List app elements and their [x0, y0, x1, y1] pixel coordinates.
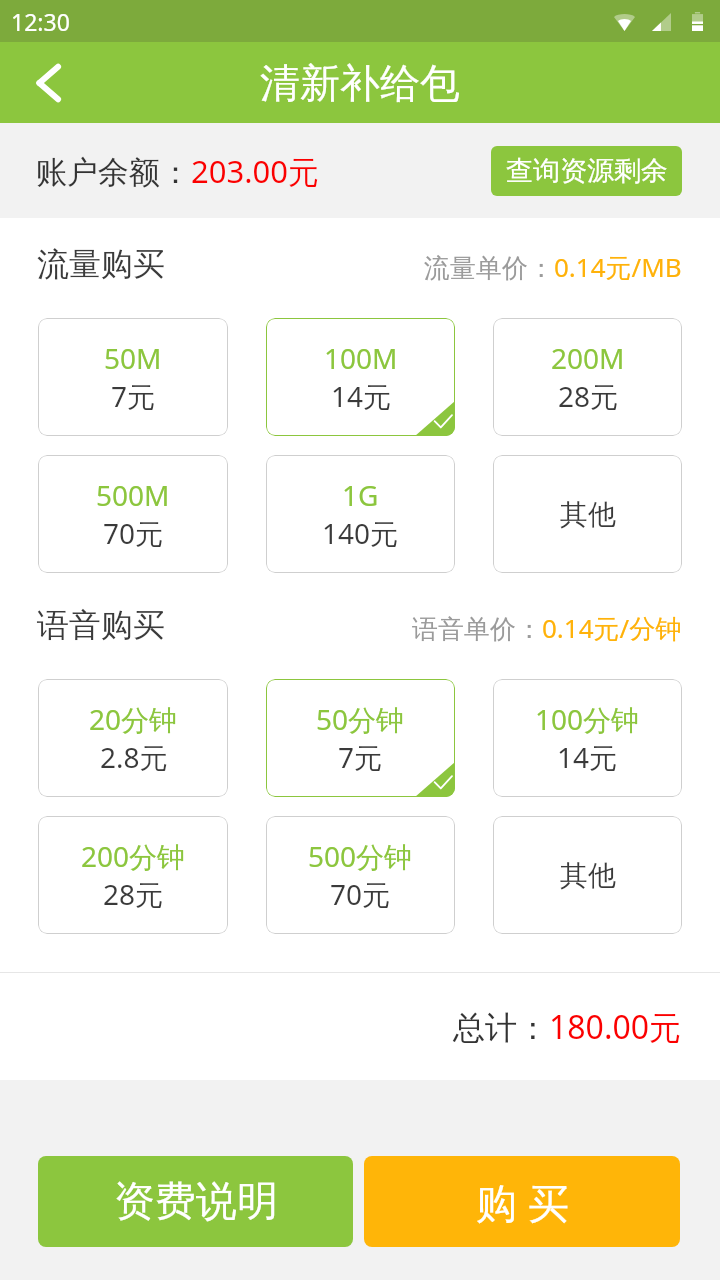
button[interactable]: 资费说明: [38, 1156, 353, 1247]
staticText: 2.8元: [100, 738, 168, 776]
staticText: 14元: [557, 738, 618, 776]
staticText: 70元: [330, 875, 391, 913]
staticText: 语音单价：0.14元/分钟: [412, 610, 682, 646]
staticText: 28元: [103, 875, 164, 913]
button[interactable]: 购 买: [364, 1156, 680, 1247]
button[interactable]: 100分钟: [493, 679, 682, 797]
staticText: 清新补给包: [260, 58, 460, 108]
staticText: 70元: [103, 514, 164, 552]
button[interactable]: 200分钟: [38, 816, 228, 934]
staticText: 账户余额：203.00元: [36, 150, 319, 192]
staticText: 流量购买: [37, 244, 165, 284]
staticText: 20分钟: [89, 700, 178, 738]
staticText: 资费说明: [114, 1176, 278, 1228]
staticText: 7元: [338, 738, 383, 776]
button[interactable]: 其他: [493, 455, 682, 573]
button[interactable]: 50分钟: [266, 679, 455, 797]
staticText: 28元: [558, 377, 619, 415]
staticText: 语音购买: [37, 605, 165, 645]
staticText: 200分钟: [81, 837, 186, 875]
button[interactable]: 其他: [493, 816, 682, 934]
button[interactable]: 50M: [38, 318, 228, 436]
staticText: 50M: [104, 339, 162, 377]
staticText: 500分钟: [308, 837, 413, 875]
staticText: 其他: [560, 858, 616, 893]
button[interactable]: 20分钟: [38, 679, 228, 797]
button[interactable]: 500M: [38, 455, 228, 573]
staticText: 总计：180.00元: [453, 1005, 682, 1049]
staticText: 50分钟: [316, 700, 405, 738]
button[interactable]: Back: [0, 42, 96, 123]
staticText: 查询资源剩余: [506, 154, 668, 188]
staticText: 流量单价：0.14元/MB: [424, 249, 682, 285]
staticText: 7元: [111, 377, 156, 415]
staticText: 其他: [560, 497, 616, 532]
button[interactable]: 200M: [493, 318, 682, 436]
staticText: 1G: [342, 476, 379, 514]
staticText: 12:30: [11, 6, 70, 37]
button[interactable]: 100M: [266, 318, 455, 436]
button[interactable]: 查询资源剩余: [491, 146, 682, 196]
staticText: 200M: [551, 339, 625, 377]
staticText: 100分钟: [535, 700, 640, 738]
staticText: 购 买: [476, 1174, 569, 1230]
staticText: 500M: [96, 476, 170, 514]
staticText: 100M: [324, 339, 398, 377]
button[interactable]: 500分钟: [266, 816, 455, 934]
staticText: 14元: [331, 377, 392, 415]
staticText: 140元: [322, 514, 399, 552]
button[interactable]: 1G: [266, 455, 455, 573]
